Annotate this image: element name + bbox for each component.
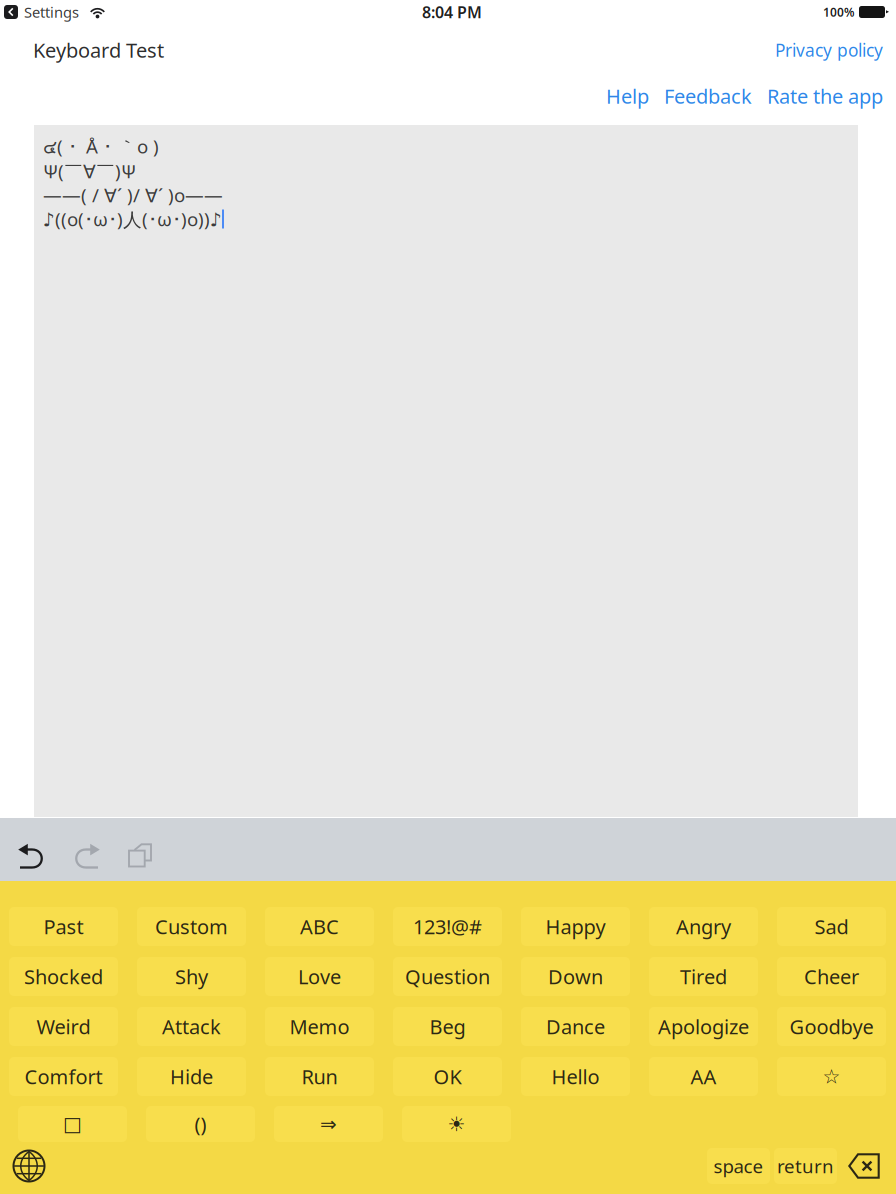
button[interactable]: Shocked: [9, 957, 118, 996]
staticText: Dance: [546, 1013, 605, 1040]
staticText: OK: [433, 1063, 461, 1090]
staticText: ⇒: [320, 1113, 337, 1135]
button[interactable]: Sad: [777, 907, 886, 946]
button[interactable]: Attack: [137, 1007, 246, 1046]
staticText: Hello: [551, 1063, 599, 1090]
staticText: return: [777, 1154, 834, 1178]
staticText: Custom: [155, 913, 228, 940]
staticText: Settings: [24, 2, 79, 22]
button[interactable]: Goodbye: [777, 1007, 886, 1046]
staticText: Keyboard Test: [33, 37, 164, 63]
staticText: Past: [43, 913, 83, 940]
button[interactable]: Custom: [137, 907, 246, 946]
staticText: Question: [405, 963, 490, 990]
staticText: 123!@#: [413, 913, 482, 940]
button[interactable]: Happy: [521, 907, 630, 946]
staticText: Attack: [162, 1013, 221, 1040]
button[interactable]: Help: [606, 83, 649, 109]
button[interactable]: □: [18, 1106, 127, 1142]
staticText: Shocked: [24, 963, 103, 990]
button[interactable]: (): [146, 1106, 255, 1142]
staticText: space: [713, 1154, 763, 1178]
staticText: Beg: [429, 1013, 465, 1040]
button[interactable]: Privacy policy: [775, 38, 883, 61]
button[interactable]: Comfort: [9, 1057, 118, 1096]
button[interactable]: Past: [9, 907, 118, 946]
button[interactable]: Down: [521, 957, 630, 996]
button[interactable]: Feedback: [664, 83, 752, 109]
staticText: □: [63, 1113, 82, 1135]
button[interactable]: Love: [265, 957, 374, 996]
button[interactable]: 123!@#: [393, 907, 502, 946]
button[interactable]: space: [707, 1148, 770, 1184]
staticText: Angry: [676, 913, 731, 940]
button[interactable]: Cheer: [777, 957, 886, 996]
staticText: Love: [298, 963, 341, 990]
button[interactable]: Question: [393, 957, 502, 996]
button[interactable]: Hide: [137, 1057, 246, 1096]
staticText: ABC: [300, 913, 339, 940]
button[interactable]: Shy: [137, 957, 246, 996]
button[interactable]: Beg: [393, 1007, 502, 1046]
staticText: AA: [690, 1063, 716, 1090]
staticText: Apologize: [658, 1013, 749, 1040]
button[interactable]: OK: [393, 1057, 502, 1096]
staticText: Comfort: [24, 1063, 102, 1090]
button[interactable]: AA: [649, 1057, 758, 1096]
button[interactable]: ☀: [402, 1106, 511, 1142]
staticText: Rate the app: [767, 83, 883, 109]
staticText: ☆: [822, 1065, 840, 1088]
button[interactable]: return: [774, 1148, 837, 1184]
staticText: Ψ(￣∀￣)Ψ: [43, 159, 136, 183]
staticText: Hide: [170, 1063, 213, 1090]
button[interactable]: Run: [265, 1057, 374, 1096]
staticText: ☀: [447, 1113, 465, 1135]
staticText: Tired: [680, 963, 727, 990]
staticText: 100%: [823, 4, 855, 20]
staticText: Feedback: [664, 83, 752, 109]
staticText: Weird: [36, 1013, 90, 1040]
button[interactable]: Hello: [521, 1057, 630, 1096]
staticText: (): [194, 1111, 206, 1137]
button[interactable]: Angry: [649, 907, 758, 946]
button[interactable]: ☆: [777, 1057, 886, 1096]
staticText: ๔( ･ Å ･ ｀o ): [43, 132, 159, 161]
button[interactable]: Settings: [4, 0, 79, 24]
button[interactable]: Apologize: [649, 1007, 758, 1046]
button[interactable]: Delete: [846, 1148, 882, 1184]
button[interactable]: Memo: [265, 1007, 374, 1046]
staticText: Goodbye: [789, 1013, 873, 1040]
button[interactable]: Weird: [9, 1007, 118, 1046]
staticText: 8:04 PM: [422, 1, 482, 23]
staticText: ――( / ∀´ )/ ∀´ )o――: [43, 183, 223, 207]
staticText: Happy: [545, 913, 605, 940]
staticText: Help: [606, 83, 649, 109]
button[interactable]: Rate the app: [767, 83, 883, 109]
staticText: Run: [301, 1063, 337, 1090]
button[interactable]: Redo: [59, 818, 113, 881]
staticText: Sad: [814, 913, 848, 940]
button[interactable]: ⇒: [274, 1106, 383, 1142]
button[interactable]: Tired: [649, 957, 758, 996]
staticText: Shy: [175, 963, 208, 990]
staticText: Down: [548, 963, 603, 990]
button[interactable]: Next keyboard: [7, 1148, 51, 1184]
button[interactable]: Dance: [521, 1007, 630, 1046]
staticText: ♪((o(･ω･)人(･ω･)o))♪: [43, 207, 222, 231]
button[interactable]: ABC: [265, 907, 374, 946]
button[interactable]: Undo: [5, 818, 59, 881]
staticText: Memo: [289, 1013, 349, 1040]
staticText: Cheer: [804, 963, 859, 990]
button[interactable]: Paste: [113, 818, 167, 881]
staticText: Privacy policy: [775, 38, 883, 61]
